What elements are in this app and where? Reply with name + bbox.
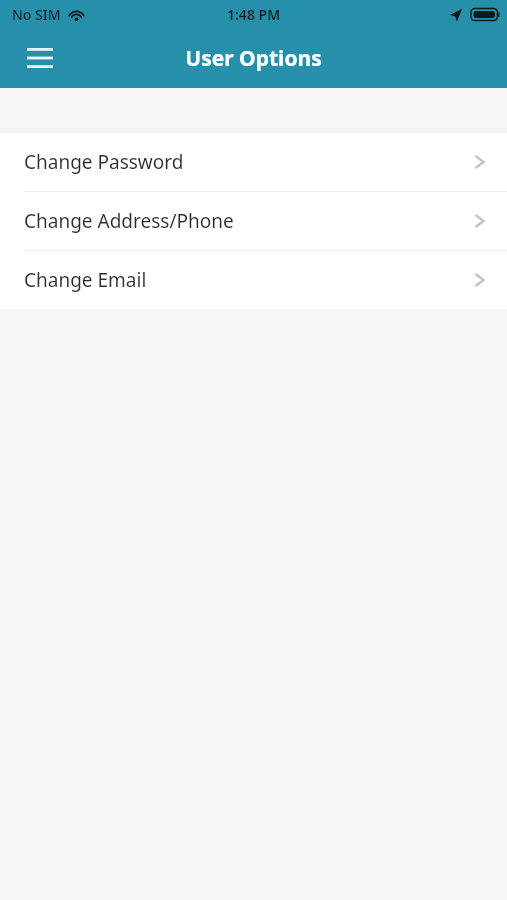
button[interactable]: Change Password <box>0 133 507 191</box>
staticText: 1:48 PM <box>227 5 281 24</box>
staticText: Change Password <box>24 149 471 175</box>
button[interactable]: Change Address/Phone <box>0 192 507 250</box>
staticText: No SIM <box>12 5 61 24</box>
button[interactable]: Open navigation menu <box>16 34 64 82</box>
staticText: Change Address/Phone <box>24 208 471 234</box>
button[interactable]: Change Email <box>0 251 507 309</box>
staticText: Change Email <box>24 267 471 293</box>
staticText: User Options <box>185 44 322 73</box>
